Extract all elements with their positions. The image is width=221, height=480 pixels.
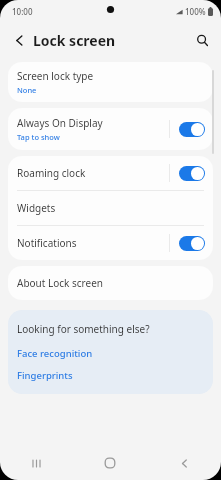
staticText: Tap to show	[17, 132, 60, 142]
staticText: 100%	[185, 6, 206, 17]
button[interactable]: Back	[6, 27, 32, 53]
staticText: Screen lock type	[17, 69, 94, 83]
button[interactable]: Roaming clock	[8, 156, 213, 190]
button[interactable]: Fingerprints	[17, 369, 73, 382]
button[interactable]: Toggle	[179, 236, 205, 251]
staticText: Fingerprints	[17, 369, 73, 382]
button[interactable]: Always On Display	[8, 108, 213, 150]
button[interactable]: Widgets	[8, 191, 213, 225]
staticText: Roaming clock	[17, 166, 86, 180]
button[interactable]: Recents	[0, 446, 73, 480]
button[interactable]: About Lock screen	[8, 266, 213, 300]
staticText: Looking for something else?	[17, 322, 150, 336]
button[interactable]: Face recognition	[17, 347, 93, 360]
button[interactable]: Notifications	[8, 226, 213, 260]
staticText: About Lock screen	[17, 276, 103, 290]
button[interactable]: Toggle	[179, 166, 205, 181]
button[interactable]: Screen lock type	[8, 62, 213, 102]
staticText: Lock screen	[33, 31, 116, 50]
staticText: None	[17, 85, 37, 95]
staticText: Always On Display	[17, 116, 103, 130]
staticText: 10:00	[12, 6, 33, 17]
button[interactable]: Search	[189, 27, 215, 53]
staticText: Face recognition	[17, 347, 93, 360]
button[interactable]: Home	[73, 446, 147, 480]
button[interactable]: Back	[147, 446, 221, 480]
staticText: Widgets	[17, 201, 56, 215]
button[interactable]: Toggle	[179, 122, 205, 137]
staticText: Notifications	[17, 236, 77, 250]
